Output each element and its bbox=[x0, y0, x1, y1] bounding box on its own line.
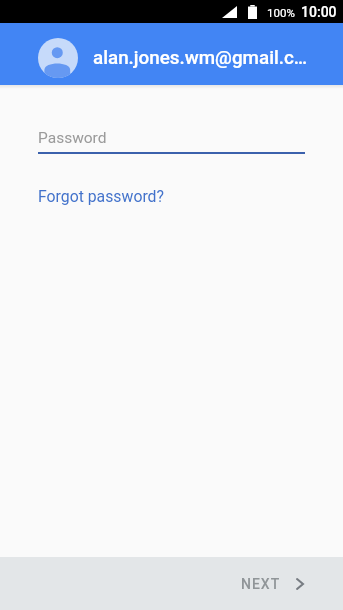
staticText: Password bbox=[38, 129, 107, 147]
staticText: alan.jones.wm@gmail.c… bbox=[93, 47, 308, 69]
staticText: Forgot password? bbox=[38, 187, 164, 206]
staticText: 10:00 bbox=[301, 4, 337, 20]
button[interactable]: NEXT bbox=[235, 570, 310, 598]
button[interactable]: Password bbox=[38, 126, 305, 154]
staticText: NEXT bbox=[241, 576, 281, 592]
button[interactable]: Forgot password? bbox=[38, 187, 164, 206]
other: Account avatar bbox=[38, 38, 78, 78]
staticText: 100% bbox=[267, 6, 295, 19]
